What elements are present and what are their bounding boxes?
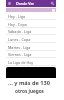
button[interactable]: La Liga de Hoy [6,58,56,66]
staticText: Hoy - Liga [8,14,26,19]
staticText: Sábado - Liga [8,29,32,34]
button[interactable]: Lunes - Copa [6,35,56,43]
staticText: ... y más de 130 [8,79,50,87]
staticText: Donde Ver [16,1,35,6]
staticText: Hoy - Copa [8,22,27,27]
staticText: Martes - Liga [8,45,31,50]
button[interactable]: Banner [6,8,56,12]
button[interactable]: Menu [7,1,12,6]
button[interactable]: Hoy - Copa [6,20,56,28]
staticText: otros juegos [15,88,44,94]
button[interactable]: Martes - Liga [6,43,56,51]
button[interactable]: Sábado - Liga [6,28,56,35]
staticText: La Liga de Hoy [8,60,34,65]
button[interactable]: Viernes - Liga [6,51,56,58]
staticText: Lunes - Copa [8,37,31,42]
staticText: Viernes - Liga [8,52,32,57]
button[interactable]: Search [50,1,55,6]
button[interactable]: Hoy - Liga [6,12,56,20]
